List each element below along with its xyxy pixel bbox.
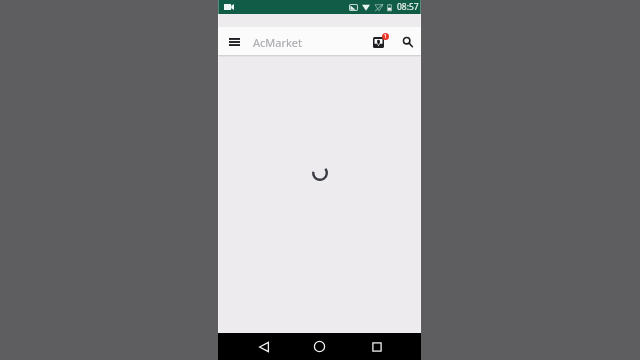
staticText: AcMarket bbox=[253, 35, 303, 50]
button[interactable]: Open navigation menu bbox=[223, 27, 245, 55]
staticText: 1 bbox=[384, 33, 387, 40]
button[interactable]: Home bbox=[306, 333, 333, 360]
button[interactable]: Search bbox=[395, 27, 421, 55]
button[interactable]: Downloads bbox=[369, 27, 395, 55]
staticText: 08:57 bbox=[397, 1, 419, 13]
button[interactable]: Back bbox=[250, 333, 277, 360]
button[interactable]: Recent apps bbox=[363, 333, 390, 360]
